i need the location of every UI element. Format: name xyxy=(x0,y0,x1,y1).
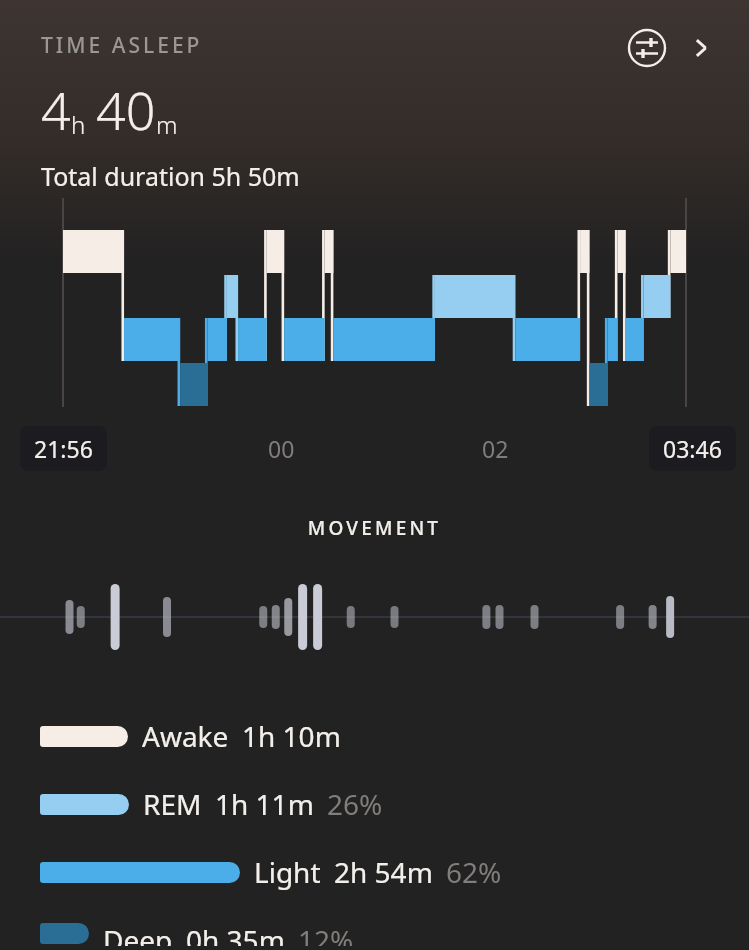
button[interactable]: Deep xyxy=(0,917,749,950)
staticText: 1h 10m xyxy=(242,717,341,755)
staticText: m xyxy=(156,108,178,141)
button[interactable]: REM xyxy=(0,781,749,827)
staticText: Total duration 5h 50m xyxy=(41,159,300,193)
staticText: Light xyxy=(254,853,321,891)
staticText: 40 xyxy=(96,74,156,145)
staticText: 62% xyxy=(446,853,502,891)
staticText: MOVEMENT xyxy=(0,515,749,541)
staticText: TIME ASLEEP xyxy=(41,31,203,60)
button[interactable]: Movement during sleep xyxy=(0,577,749,657)
staticText: 0h 35m xyxy=(186,921,285,946)
button[interactable]: Light xyxy=(0,849,749,895)
button[interactable]: Adjust sleep data xyxy=(625,26,669,70)
staticText: 4 xyxy=(41,74,71,145)
staticText: 00 xyxy=(268,433,295,464)
staticText: 03:46 xyxy=(663,433,722,464)
staticText: 2h 54m xyxy=(334,853,433,891)
button[interactable]: Open details xyxy=(679,26,723,70)
button[interactable] xyxy=(0,193,749,413)
staticText: 12% xyxy=(298,921,354,946)
staticText: REM xyxy=(143,785,202,823)
staticText: 21:56 xyxy=(34,433,93,464)
staticText: Deep xyxy=(103,921,173,946)
staticText: 26% xyxy=(327,785,383,823)
staticText: 1h 11m xyxy=(215,785,314,823)
staticText: 02 xyxy=(482,433,509,464)
staticText: Awake xyxy=(142,717,229,755)
button[interactable]: Awake xyxy=(0,713,749,759)
staticText: h xyxy=(71,108,86,141)
